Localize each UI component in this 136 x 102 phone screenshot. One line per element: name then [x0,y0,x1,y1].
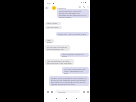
button[interactable]: More options [86,5,90,9]
button[interactable]: No, that is everything for now. I apprec… [62,67,89,74]
button[interactable]: Camera [46,90,49,93]
staticText: On the way and should arrive between two [47,46,68,50]
button[interactable]: Emoji [82,90,85,93]
staticText: No, that is everything for now. I apprec… [64,68,87,74]
button[interactable]: Thank you, I will be home all day [56,32,89,36]
button[interactable]: Let me check on that [45,26,62,29]
staticText: Message [58,91,66,93]
button[interactable]: Send [86,90,89,93]
staticText: Thank you, I will be home all day [58,33,87,36]
button[interactable]: You are welcome. Is there anything else … [45,59,74,65]
button[interactable]: Carolina [52,6,66,10]
button[interactable]: Home [64,96,68,100]
button[interactable]: Video call [78,5,82,9]
staticText: Your order is [47,39,52,43]
button[interactable]: Back [45,6,48,9]
staticText: That is perfect, thanks so much [62,53,87,57]
button[interactable]: Message [55,90,80,93]
button[interactable]: Good morning, could you please tell me w… [57,9,89,18]
staticText: You are welcome. Is there anything else … [47,60,72,64]
staticText: 9:41 [47,2,52,5]
staticText: Hello, good morning [47,22,59,25]
button[interactable]: Gallery [50,90,53,93]
button[interactable]: Hello, good morning [45,22,61,25]
button[interactable]: Recents [74,96,78,100]
staticText: Carolina [57,7,66,10]
staticText: Let me check on that [47,26,60,29]
button[interactable]: Back [54,96,58,100]
button[interactable]: Perfect, have a wonderful day ahead. We … [49,76,89,86]
staticText: Perfect, have a wonderful day ahead. We … [51,77,87,85]
button[interactable]: Call [82,5,86,9]
button[interactable]: That is perfect, thanks so much [60,53,89,57]
button[interactable]: Your order is [45,39,54,43]
button[interactable]: On the way and should arrive between two [45,45,70,51]
staticText: Good morning, could you please tell me w… [59,10,87,18]
